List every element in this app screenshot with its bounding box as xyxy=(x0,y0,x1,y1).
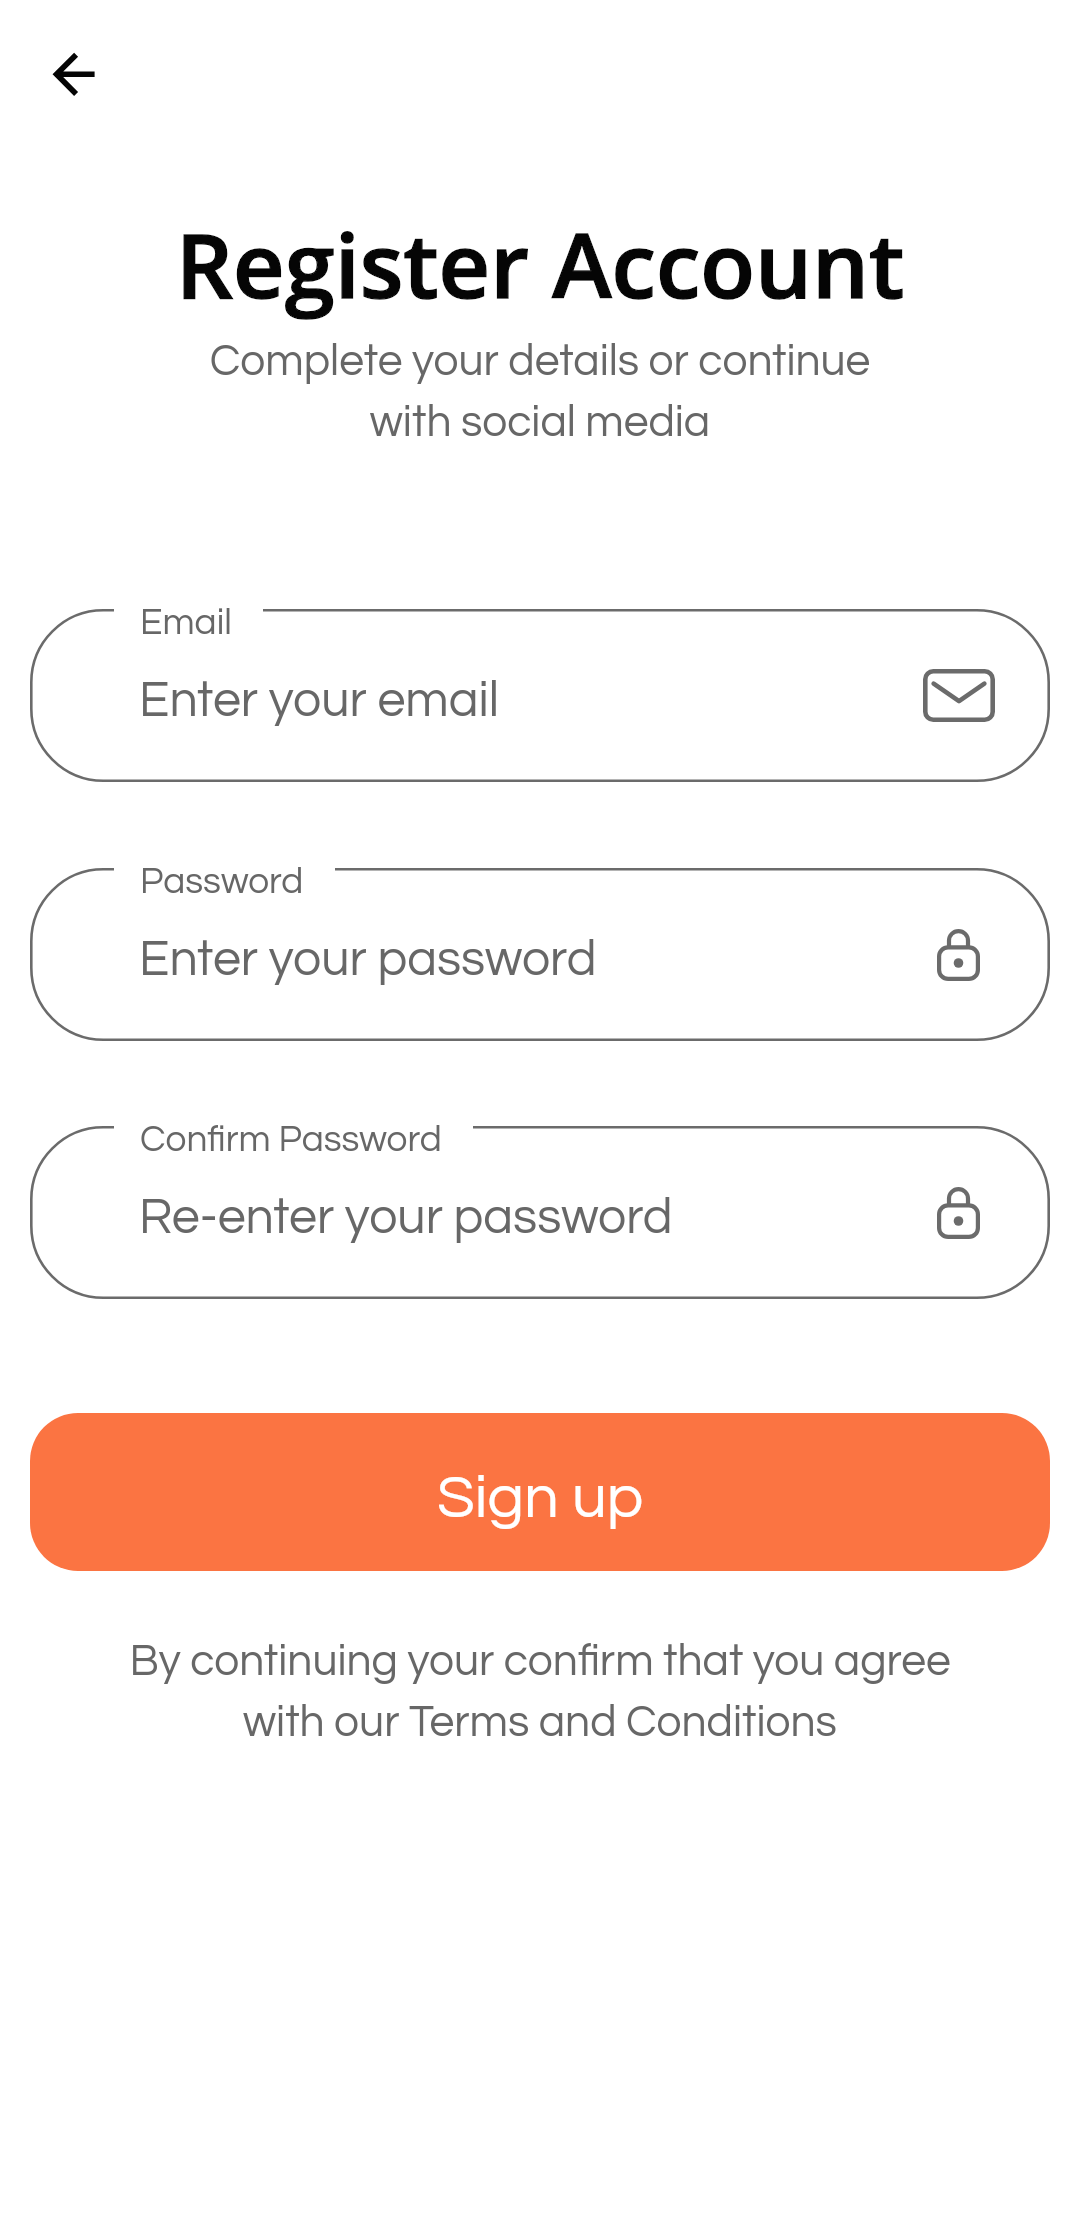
staticText: Register Account xyxy=(0,202,1080,324)
staticText: By continuing your confirm that you agre… xyxy=(0,1639,1080,1746)
button[interactable]: Back xyxy=(20,28,116,124)
button[interactable]: Password xyxy=(30,868,1050,1041)
staticText: Re-enter your password xyxy=(139,1192,673,1244)
button[interactable]: Email xyxy=(30,609,1050,782)
staticText: Password xyxy=(140,863,304,901)
staticText: Enter your password xyxy=(139,934,597,986)
button[interactable]: Sign up xyxy=(30,1413,1050,1571)
staticText: Confirm Password xyxy=(140,1121,442,1159)
staticText: Enter your email xyxy=(139,675,499,727)
staticText: Sign up xyxy=(437,1467,644,1530)
button[interactable]: Confirm Password xyxy=(30,1126,1050,1299)
staticText: Email xyxy=(140,604,232,642)
staticText: Complete your details or continue with s… xyxy=(0,339,1080,446)
staticText: Register Account xyxy=(0,202,1080,324)
